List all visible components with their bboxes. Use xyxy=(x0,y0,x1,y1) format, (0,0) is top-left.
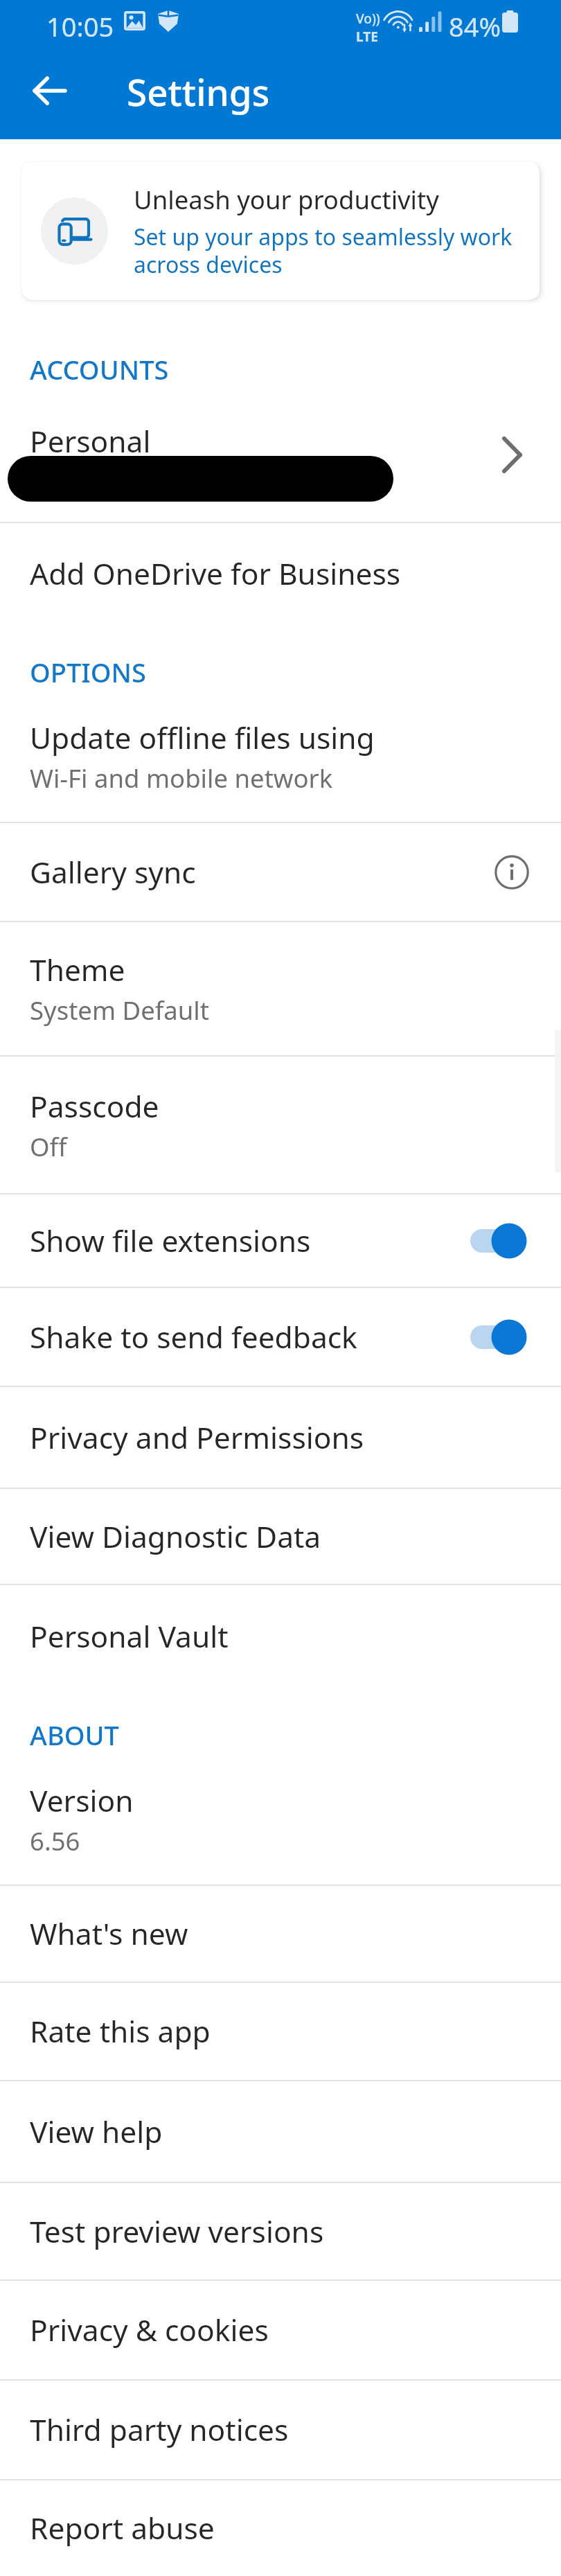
staticText: Update offline files using xyxy=(30,718,375,758)
staticText: Test preview versions xyxy=(30,2212,324,2252)
button[interactable]: Unleash your productivity xyxy=(21,161,540,300)
staticText: OPTIONS xyxy=(30,654,146,690)
staticText: Gallery sync xyxy=(30,852,196,892)
staticText: 84% xyxy=(449,8,501,44)
staticText: 10:05 xyxy=(46,8,114,44)
button[interactable]: Theme xyxy=(0,922,561,1055)
button[interactable]: Toggle Show file extensions xyxy=(470,1221,527,1260)
button[interactable]: Shake to send feedback xyxy=(0,1288,561,1386)
button[interactable]: Test preview versions xyxy=(0,2183,561,2279)
staticText: 6.56 xyxy=(30,1824,80,1858)
button[interactable]: Gallery sync xyxy=(0,823,561,921)
staticText: ACCOUNTS xyxy=(30,351,169,387)
staticText: Rate this app xyxy=(30,2011,211,2052)
button[interactable]: Personal Vault xyxy=(0,1585,561,1687)
staticText: LTE xyxy=(356,28,378,46)
button[interactable]: Toggle Shake to send feedback xyxy=(470,1318,527,1357)
staticText: Third party notices xyxy=(30,2410,289,2450)
staticText: Privacy & cookies xyxy=(30,2310,269,2350)
button[interactable]: Passcode xyxy=(0,1057,561,1193)
button[interactable]: Report abuse xyxy=(0,2480,561,2576)
staticText: Settings xyxy=(127,67,270,116)
button[interactable]: Rate this app xyxy=(0,1983,561,2080)
staticText: What's new xyxy=(30,1914,188,1954)
button[interactable]: View help xyxy=(0,2081,561,2182)
button[interactable]: Privacy and Permissions xyxy=(0,1387,561,1488)
button[interactable]: Add OneDrive for Business xyxy=(0,523,561,624)
staticText: Report abuse xyxy=(30,2508,215,2548)
button[interactable]: Version xyxy=(0,1754,561,1885)
button[interactable]: More information xyxy=(490,850,534,894)
staticText: Wi-Fi and mobile network xyxy=(30,761,333,795)
staticText: Vo)) xyxy=(356,10,380,28)
staticText: Passcode xyxy=(30,1086,159,1127)
staticText: View help xyxy=(30,2112,163,2152)
staticText: View Diagnostic Data xyxy=(30,1517,321,1557)
staticText: ABOUT xyxy=(30,1717,119,1753)
staticText: Personal xyxy=(30,421,151,461)
staticText: Unleash your productivity xyxy=(134,182,439,217)
staticText: Privacy and Permissions xyxy=(30,1418,364,1458)
button[interactable]: Navigate up xyxy=(16,58,82,124)
staticText: Show file extensions xyxy=(30,1221,311,1261)
button[interactable]: What's new xyxy=(0,1886,561,1982)
staticText: Personal Vault xyxy=(30,1616,229,1657)
staticText: Add OneDrive for Business xyxy=(30,554,401,594)
button[interactable]: Privacy & cookies xyxy=(0,2281,561,2379)
staticText: Set up your apps to seamlessly work acro… xyxy=(134,222,540,280)
button[interactable]: Show file extensions xyxy=(0,1194,561,1287)
button[interactable]: Personal xyxy=(0,388,561,522)
button[interactable]: View Diagnostic Data xyxy=(0,1489,561,1584)
staticText: Theme xyxy=(30,950,125,990)
button[interactable]: Update offline files using xyxy=(0,691,561,822)
button[interactable]: Third party notices xyxy=(0,2381,561,2479)
staticText: Shake to send feedback xyxy=(30,1317,357,1357)
staticText: System Default xyxy=(30,993,209,1027)
staticText: Version xyxy=(30,1781,134,1821)
staticText: Off xyxy=(30,1129,67,1164)
